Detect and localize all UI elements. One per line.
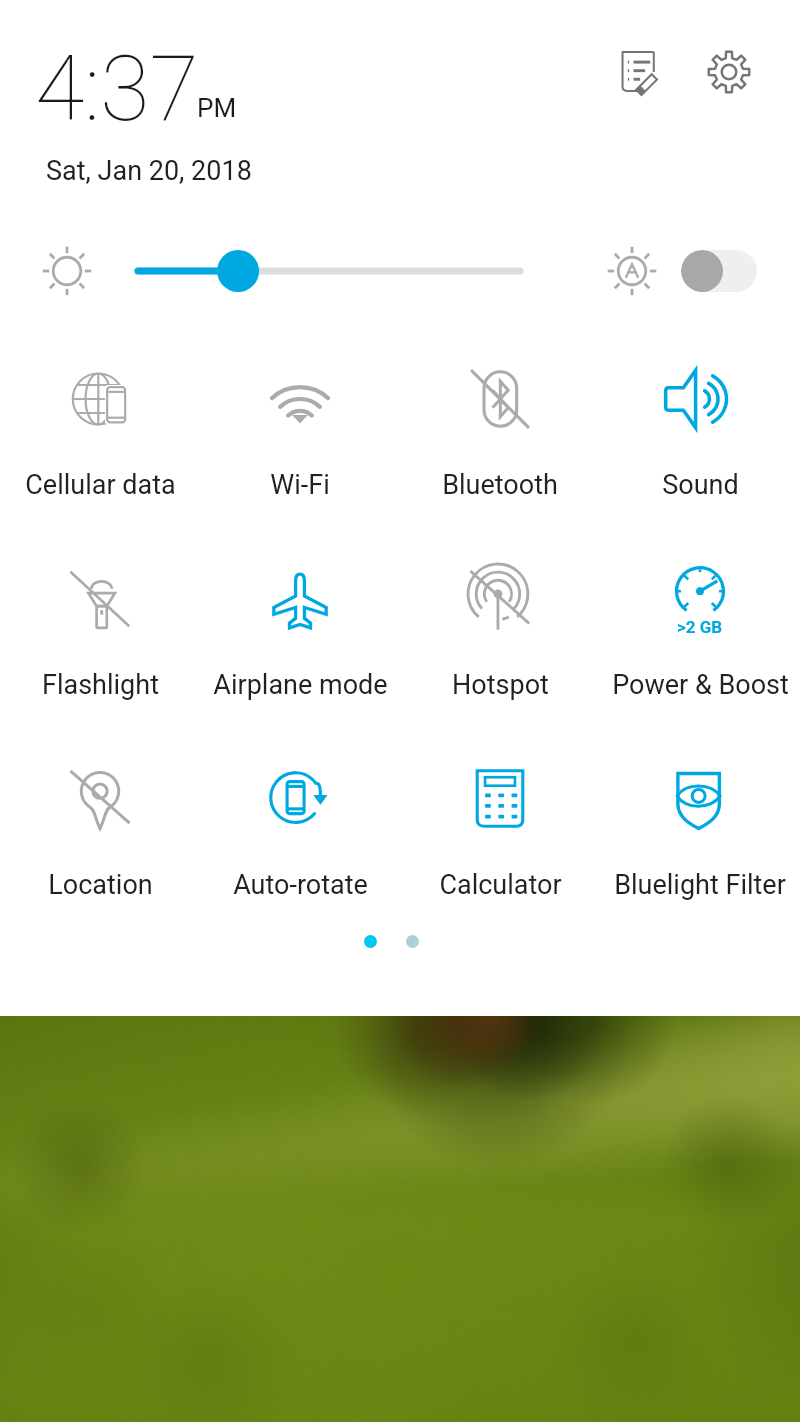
staticText: Sat, Jan 20, 2018 [46, 155, 252, 187]
staticText: Wi-Fi [270, 469, 330, 501]
button[interactable]: Flashlight [0, 540, 200, 740]
button[interactable]: Location [0, 740, 200, 940]
button[interactable]: Auto brightness [681, 250, 757, 292]
staticText: Sound [662, 469, 739, 501]
staticText: Flashlight [42, 669, 159, 701]
staticText: 4:37 [35, 37, 199, 142]
button[interactable]: Calculator [400, 740, 600, 940]
staticText: Cellular data [25, 469, 176, 501]
button[interactable]: Cellular data [0, 340, 200, 540]
button[interactable]: >2 GB [600, 540, 800, 740]
button[interactable]: Wi-Fi [200, 340, 400, 540]
staticText: Bluelight Filter [614, 869, 786, 901]
button[interactable]: Brightness slider [138, 264, 520, 278]
staticText: Airplane mode [213, 669, 388, 701]
button[interactable]: Settings [697, 40, 761, 104]
staticText: Calculator [439, 869, 562, 901]
button[interactable]: Page 1 [364, 935, 377, 948]
button[interactable]: Auto-rotate [200, 740, 400, 940]
button[interactable]: Bluelight Filter [600, 740, 800, 940]
staticText: Bluetooth [442, 469, 558, 501]
button[interactable]: Edit quick settings [611, 40, 675, 104]
button[interactable]: Hotspot [400, 540, 600, 740]
staticText: PM [197, 93, 237, 123]
staticText: Hotspot [452, 669, 549, 701]
button[interactable]: Bluetooth [400, 340, 600, 540]
staticText: Auto-rotate [233, 869, 368, 901]
staticText: >2 GB [677, 617, 723, 637]
button[interactable]: Airplane mode [200, 540, 400, 740]
button[interactable]: Page 2 [406, 935, 419, 948]
staticText: Power & Boost [612, 669, 789, 701]
button[interactable]: Sound [600, 340, 800, 540]
staticText: Location [48, 869, 153, 901]
